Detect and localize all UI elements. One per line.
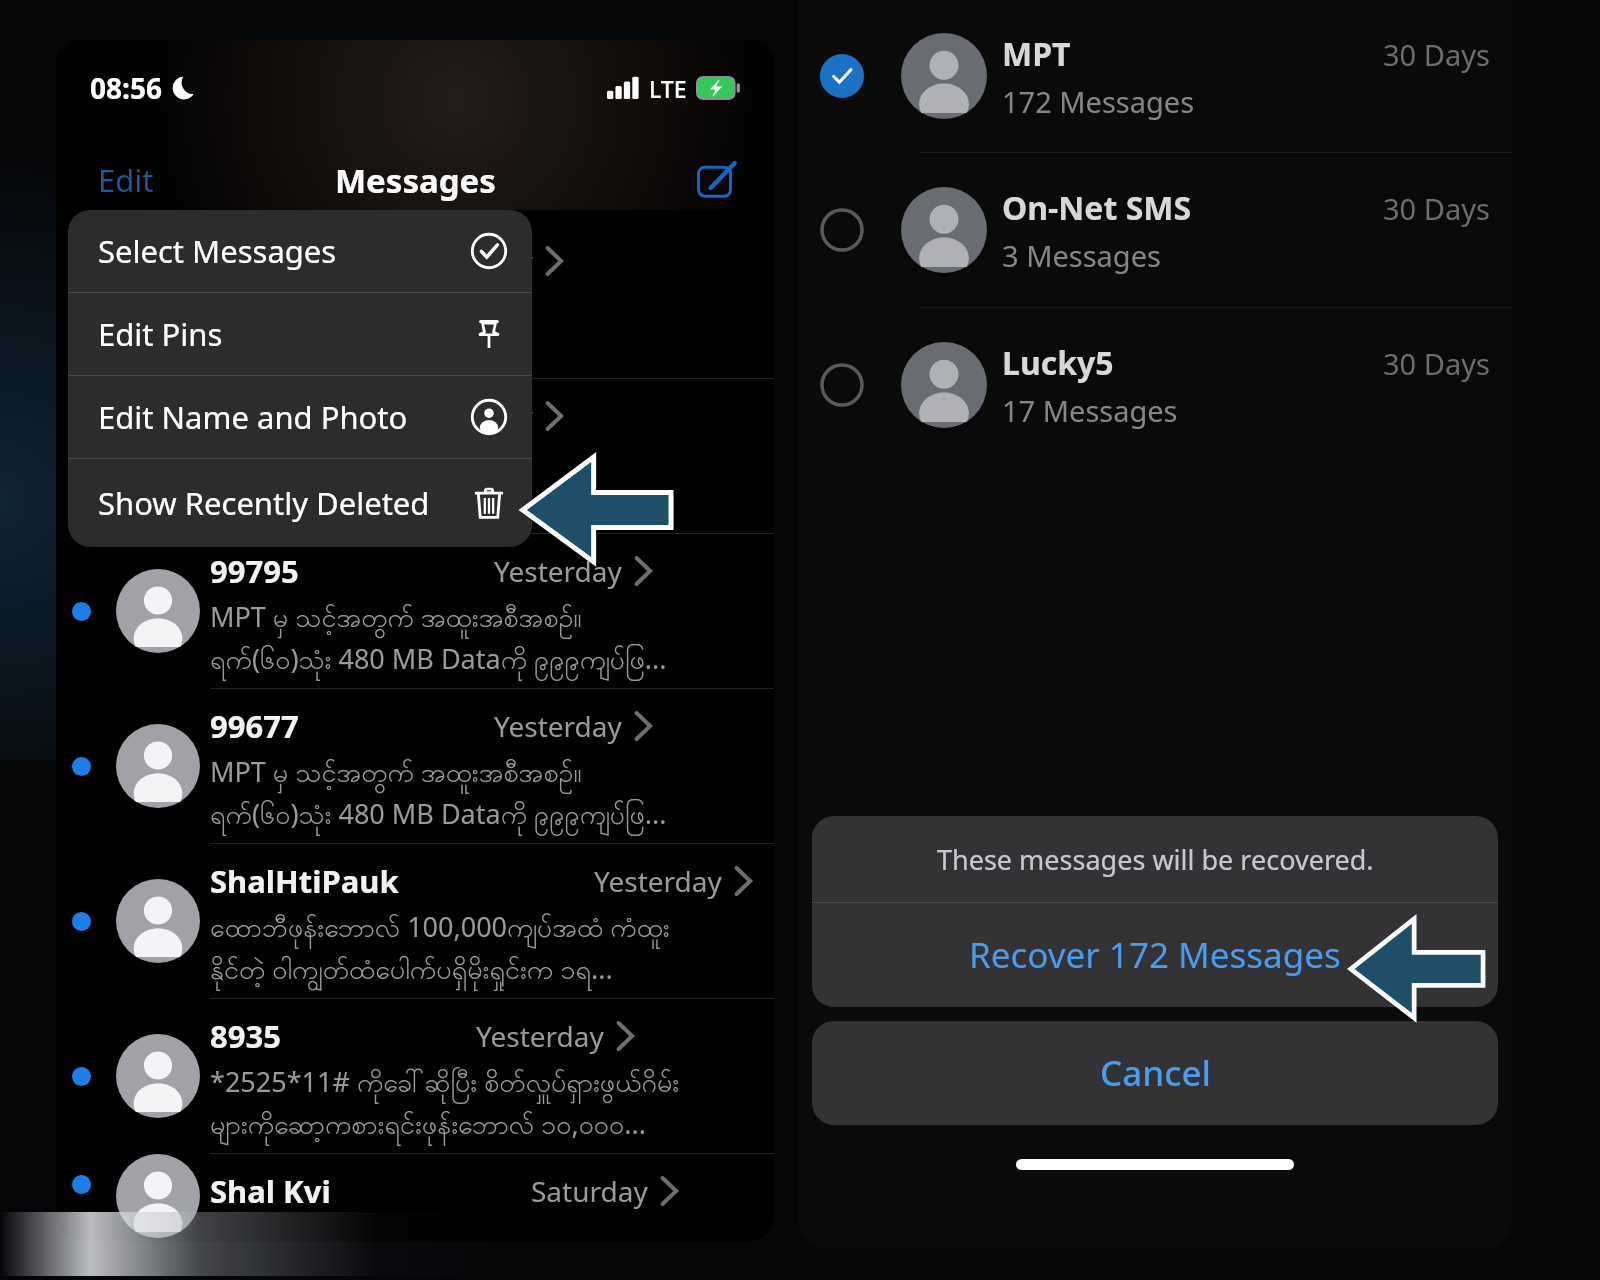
staticText: 3 Messages [1002, 236, 1161, 275]
button[interactable]: Edit Name and Photo [68, 376, 532, 458]
staticText: 30 Days [1383, 189, 1490, 228]
button[interactable]: 99677 [56, 689, 774, 844]
staticText: 17 Messages [1002, 391, 1178, 430]
staticText: Yesterday [476, 1017, 604, 1055]
staticText: Edit Pins [98, 313, 470, 355]
staticText: MPT မှ သင့်အတွက် အထူးအစီအစဉ်။ [210, 598, 582, 640]
button[interactable]: Recover 172 Messages [812, 903, 1498, 1007]
staticText: m [210, 443, 355, 480]
staticText: ရက်(၆၀)သုံး 480 MB Dataကို ၉၉၉ကျပ်ဖြ... [210, 640, 667, 682]
staticText: 08:56 [90, 69, 162, 107]
button[interactable]: Show Recently Deleted [68, 459, 532, 547]
button[interactable]: MPT [798, 0, 1512, 152]
button[interactable]: Select Messages [68, 210, 532, 292]
staticText: 30 Days [1383, 344, 1490, 383]
staticText: Edit [98, 159, 154, 201]
staticText: MPT မှ သင့်အတွက် အထူးအစီအစဉ်။ [210, 753, 582, 795]
staticText: Yesterday [405, 397, 533, 435]
staticText: Edit Name and Photo [98, 396, 470, 438]
button[interactable]: Edit [92, 153, 160, 207]
staticText: Yesterday [594, 862, 722, 900]
staticText: Lucky5 [1002, 341, 1383, 385]
button[interactable]: Cancel [812, 1021, 1498, 1125]
staticText: ရက်(၆၀)သုံး 480 MB Dataကို ၉၉၉ကျပ်ဖြ... [210, 795, 667, 837]
staticText: Saturday [531, 1172, 648, 1210]
button[interactable]: 99795 [56, 534, 774, 689]
button[interactable]: Yesterday [56, 379, 774, 534]
staticText: Shal Kvi [210, 1170, 331, 1212]
button[interactable]: 8935 [56, 999, 774, 1154]
staticText: LTE [649, 73, 687, 104]
staticText: 99795 [210, 550, 299, 592]
staticText: Yesterday [494, 552, 622, 590]
staticText: တွက်ကို လို [210, 288, 364, 330]
button[interactable]: Lucky5 [798, 308, 1512, 462]
staticText: Messages [335, 158, 496, 203]
staticText: MPT [1002, 32, 1383, 76]
button[interactable]: On-Net SMS [798, 153, 1512, 307]
staticText: 172 Messages [1002, 82, 1195, 121]
staticText: Select Messages [98, 230, 470, 272]
staticText: Yesterday [405, 242, 533, 280]
staticText: Cancel [1100, 1049, 1211, 1097]
staticText: 30 Days [1383, 35, 1490, 74]
staticText: ShalHtiPauk [210, 860, 399, 902]
staticText: On-Net SMS [1002, 186, 1383, 230]
staticText: These messages will be recovered. [937, 841, 1374, 878]
staticText: နိုင်တဲ့ ဝါကျွတ်ထံပေါက်ပရှိမိုးရှုင်းက ၁… [210, 950, 613, 992]
button[interactable]: Shal Kvi [56, 1154, 774, 1214]
button[interactable]: Edit Pins [68, 293, 532, 375]
button[interactable]: New message [692, 155, 742, 205]
staticText: များကိုဆော့ကစားရင်းဖုန်းဘောလ် ၁၀,၀၀၀... [210, 1105, 646, 1147]
staticText: Show Recently Deleted [98, 482, 470, 524]
staticText: 2022. [210, 480, 371, 517]
staticText: Recover 172 Messages [969, 931, 1341, 979]
staticText: Yesterday [494, 707, 622, 745]
staticText: 8935 [210, 1015, 281, 1057]
staticText: 99677 [210, 705, 299, 747]
button[interactable]: ShalHtiPauk [56, 844, 774, 999]
staticText: ပ်ရှားဖွယ် ဟီး... [210, 330, 384, 372]
staticText: *2525*11# ကိုခေါ်ဆိုပြီး စိတ်လှူပ်ရှားဖွ… [210, 1063, 680, 1105]
button[interactable]: Yesterday [56, 224, 774, 379]
staticText: ထောဘီဖုန်းဘောလ် 100,000ကျပ်အထံ ကံထူး [210, 908, 670, 950]
